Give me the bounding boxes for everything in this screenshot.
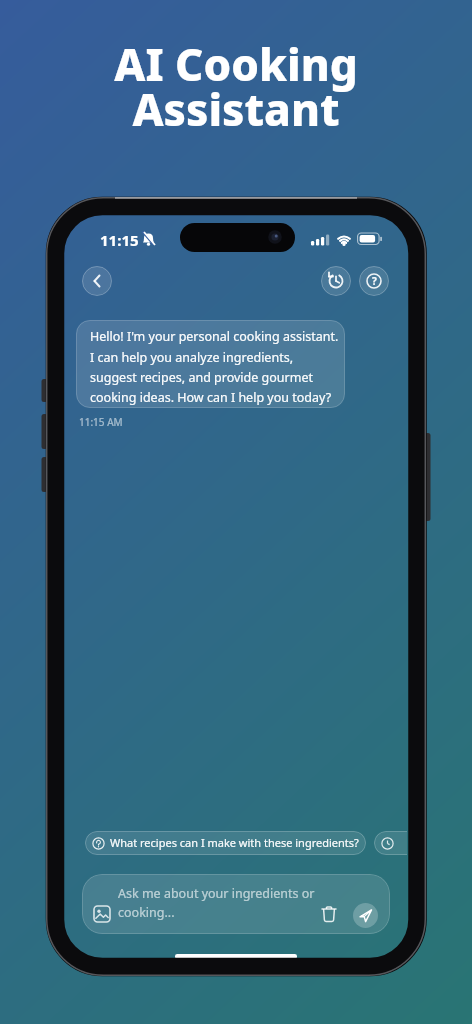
staticText: ? [372,274,377,288]
staticText: Hello! I'm your personal cooking assista… [90,328,339,405]
button[interactable] [321,266,351,296]
button[interactable] [374,831,407,855]
staticText: AI Cooking Assistant [114,34,358,139]
button[interactable]: ? [359,266,389,296]
staticText: What recipes can I make with these ingre… [110,835,359,850]
button[interactable] [320,905,338,923]
staticText: 11:15 AM [79,415,123,429]
button[interactable] [82,266,112,296]
staticText: Ask me about your ingredients or cooking… [118,885,315,921]
button[interactable] [93,905,111,923]
button[interactable] [353,903,378,928]
button[interactable]: What recipes can I make with these ingre… [85,831,366,855]
button[interactable]: Ask me about your ingredients or cooking… [82,874,390,934]
staticText: 11:15 [100,230,139,250]
